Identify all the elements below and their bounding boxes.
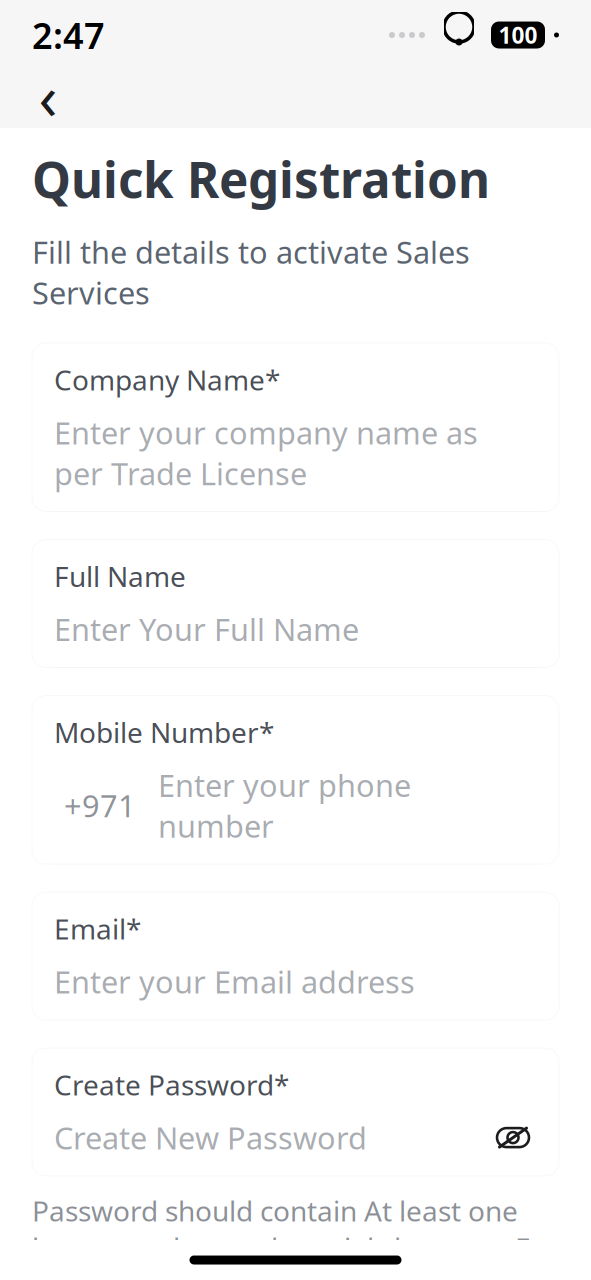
button[interactable]: Full Name bbox=[32, 540, 559, 667]
staticText: Mobile Number* bbox=[54, 713, 274, 751]
button[interactable]: Email* bbox=[32, 892, 559, 1020]
staticText: ‹ bbox=[38, 55, 57, 137]
staticText: 100 bbox=[498, 20, 537, 50]
staticText: 2:47 bbox=[32, 11, 105, 59]
staticText: Enter your Email address bbox=[54, 961, 415, 1002]
staticText: Enter Your Full Name bbox=[54, 609, 359, 649]
staticText: Quick Registration bbox=[32, 146, 490, 211]
staticText: Email* bbox=[54, 910, 141, 947]
staticText: Password should contain At least one let… bbox=[32, 1192, 554, 1280]
staticText: Enter your company name as per Trade Lic… bbox=[54, 412, 478, 493]
button[interactable]: Create Password* bbox=[32, 1048, 559, 1176]
staticText: +971 bbox=[64, 785, 136, 826]
staticText: Create Password* bbox=[54, 1066, 289, 1103]
staticText: Company Name* bbox=[54, 361, 280, 398]
staticText: Fill the details to activate Sales Servi… bbox=[32, 231, 470, 313]
staticText: Full Name bbox=[54, 558, 186, 595]
button[interactable]: Company Name* bbox=[32, 343, 559, 512]
staticText: Enter your phone number bbox=[158, 765, 411, 846]
button[interactable]: Mobile Number* bbox=[32, 695, 559, 864]
staticText: Create New Password bbox=[54, 1117, 367, 1158]
button[interactable]: Back bbox=[22, 73, 74, 125]
